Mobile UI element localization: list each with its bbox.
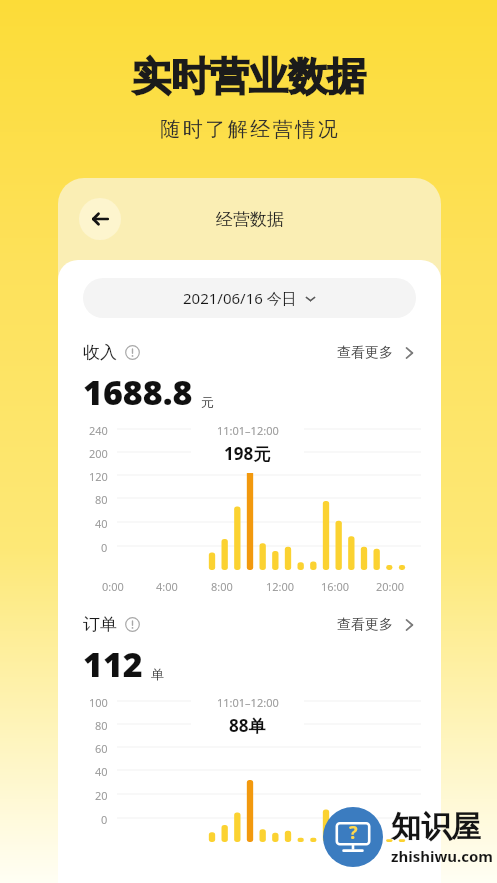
- staticText: 16:00: [321, 579, 350, 594]
- staticText: 88单: [229, 714, 266, 737]
- staticText: 2021/06/16 今日: [183, 288, 297, 308]
- staticText: ?: [349, 820, 358, 845]
- staticText: 12:00: [266, 579, 295, 594]
- staticText: 随时了解经营情况: [159, 117, 339, 142]
- staticText: 收入: [83, 342, 117, 363]
- staticText: 100: [89, 695, 108, 710]
- staticText: 80: [95, 718, 108, 733]
- staticText: 订单: [83, 614, 117, 635]
- staticText: 单: [151, 666, 164, 682]
- staticText: 0:00: [102, 579, 124, 594]
- staticText: 经营数据: [216, 209, 284, 230]
- staticText: 查看更多: [337, 344, 393, 362]
- staticText: 实时营业数据: [132, 52, 366, 101]
- staticText: 200: [89, 446, 108, 461]
- staticText: 11:01–12:00: [217, 695, 279, 710]
- staticText: 0: [101, 812, 108, 827]
- button[interactable]: Info: [125, 617, 140, 632]
- button[interactable]: Back: [79, 198, 121, 240]
- staticText: 60: [95, 741, 108, 756]
- staticText: 40: [95, 516, 108, 531]
- staticText: 20: [95, 788, 108, 803]
- staticText: 8:00: [211, 579, 233, 594]
- staticText: 4:00: [156, 579, 178, 594]
- staticText: 112: [83, 641, 143, 687]
- staticText: 40: [95, 764, 108, 779]
- staticText: zhishiwu.com: [391, 846, 493, 866]
- staticText: 0: [101, 540, 108, 555]
- staticText: 知识屋: [391, 808, 481, 846]
- staticText: 1688.8: [83, 369, 193, 415]
- button[interactable]: Info: [125, 345, 140, 360]
- staticText: 198元: [224, 442, 271, 465]
- staticText: 120: [89, 469, 108, 484]
- button[interactable]: 2021/06/16 今日: [83, 278, 416, 318]
- button[interactable]: 查看更多: [337, 616, 416, 634]
- staticText: 240: [89, 423, 108, 438]
- button[interactable]: 查看更多: [337, 344, 416, 362]
- staticText: 元: [201, 394, 214, 410]
- staticText: 11:01–12:00: [217, 423, 279, 438]
- staticText: 80: [95, 492, 108, 507]
- staticText: 20:00: [376, 579, 405, 594]
- staticText: 查看更多: [337, 616, 393, 634]
